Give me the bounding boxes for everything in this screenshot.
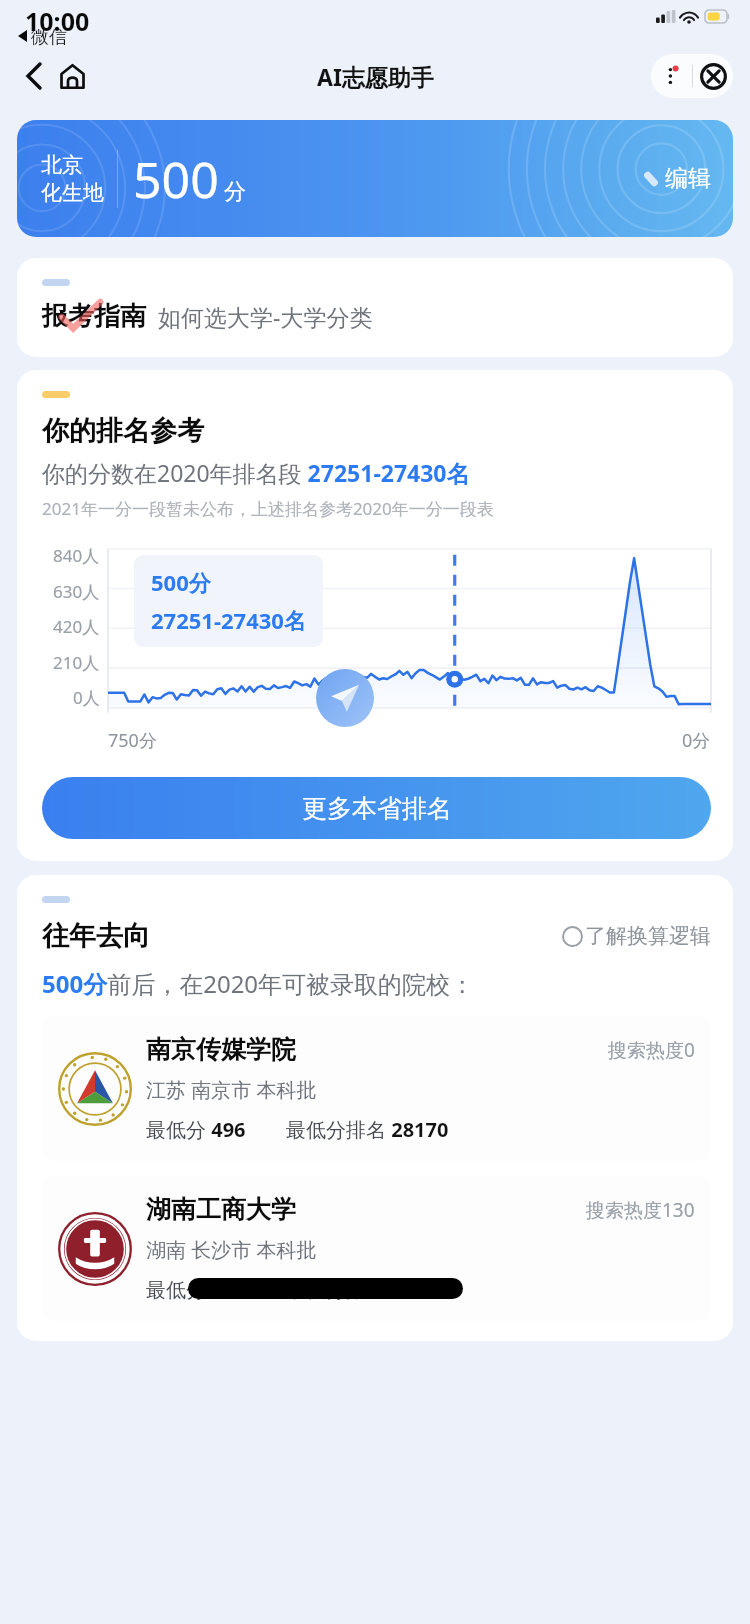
button[interactable]: Send (316, 669, 374, 727)
button[interactable]: Home (54, 58, 90, 94)
button[interactable]: Back (16, 59, 50, 93)
staticText: AI志愿助手 (317, 61, 434, 92)
staticText: 210人 (53, 651, 100, 674)
staticText: 2021年一分一段暂未公布，上述排名参考2020年一分一段表 (42, 497, 494, 520)
staticText: 750分 (108, 728, 157, 753)
staticText: 分 (224, 178, 246, 206)
staticText: 搜索热度0 (608, 1037, 695, 1063)
staticText: 你的分数在2020年排名段 27251-27430名 (42, 457, 470, 488)
button[interactable]: 报考指南 (17, 258, 733, 357)
staticText: 420人 (53, 615, 100, 638)
staticText: 湖南工商大学 (146, 1194, 296, 1225)
staticText: 500分前后，在2020年可被录取的院校： (42, 967, 475, 1000)
staticText: 500分 (151, 567, 211, 597)
staticText: 最低分 496 (146, 1276, 246, 1303)
staticText: 北京 (41, 152, 83, 178)
staticText: 10:00 (25, 4, 90, 38)
staticText: 微信 (31, 26, 67, 46)
button[interactable]: 编辑 (640, 164, 711, 193)
staticText: 江苏 南京市 本科批 (146, 1076, 317, 1103)
button[interactable]: 更多本省排名 (42, 777, 711, 839)
staticText: 0人 (73, 686, 100, 709)
staticText: 最低分 496 (146, 1116, 246, 1143)
staticText: 最低分排名 28170 (286, 1276, 449, 1303)
staticText: 报考指南 (42, 300, 146, 333)
button[interactable]: 北京 (17, 120, 733, 237)
staticText: 840人 (53, 544, 100, 567)
staticText: 化生地 (41, 180, 104, 206)
button[interactable]: Close (693, 54, 733, 98)
staticText: 湖南 长沙市 本科批 (146, 1236, 317, 1263)
staticText: 南京传媒学院 (146, 1034, 296, 1065)
staticText: 如何选大学-大学分类 (158, 301, 373, 332)
staticText: 0分 (682, 728, 711, 753)
staticText: 更多本省排名 (302, 793, 452, 824)
staticText: 你的排名参考 (42, 414, 204, 448)
button[interactable]: 了解换算逻辑 (562, 923, 711, 949)
staticText: 了解换算逻辑 (585, 923, 711, 949)
staticText: 630人 (53, 580, 100, 603)
staticText: 往年去向 (42, 919, 150, 953)
button[interactable]: More options (651, 54, 692, 98)
staticText: 编辑 (665, 164, 711, 193)
button[interactable]: 湖南工商大学 (42, 1176, 711, 1321)
button[interactable]: 南京传媒学院 (42, 1016, 711, 1161)
staticText: 27251-27430名 (151, 605, 306, 635)
staticText: 搜索热度130 (586, 1197, 695, 1223)
staticText: 500 (133, 145, 219, 213)
staticText: 最低分排名 28170 (286, 1116, 449, 1143)
